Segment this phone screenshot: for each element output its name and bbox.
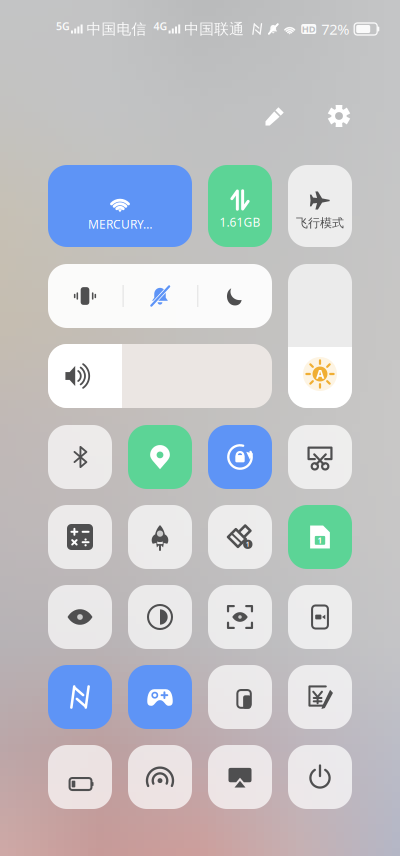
staticText: 中国联通 bbox=[184, 20, 244, 38]
staticText: 1 bbox=[317, 535, 322, 546]
button[interactable]: Power saving bbox=[48, 745, 112, 809]
button[interactable]: 飞行模式 bbox=[288, 165, 352, 247]
button[interactable]: Screen cast bbox=[208, 745, 272, 809]
button[interactable]: SIM card bbox=[288, 505, 352, 569]
button[interactable]: Screenshot bbox=[288, 425, 352, 489]
button[interactable]: 1.61GB bbox=[208, 165, 272, 247]
button[interactable]: Contrast bbox=[128, 585, 192, 649]
button[interactable]: Edit bbox=[258, 99, 292, 133]
button[interactable]: Cleaner bbox=[208, 505, 272, 569]
staticText: 1.61GB bbox=[219, 214, 260, 230]
button[interactable]: Accelerate bbox=[128, 505, 192, 569]
button[interactable]: Volume bbox=[48, 344, 272, 408]
staticText: 1 bbox=[246, 540, 250, 549]
staticText: 72% bbox=[321, 19, 349, 39]
button[interactable]: MERCURY… bbox=[48, 165, 192, 247]
staticText: HD bbox=[302, 23, 316, 35]
button[interactable]: Silent bbox=[123, 264, 197, 328]
button[interactable]: Screen recorder bbox=[288, 585, 352, 649]
button[interactable]: Do not disturb bbox=[198, 264, 272, 328]
staticText: 4G bbox=[154, 19, 168, 33]
button[interactable]: Brightness bbox=[288, 264, 352, 408]
button[interactable]: Payment bbox=[288, 665, 352, 729]
button[interactable]: Settings bbox=[322, 99, 356, 133]
button[interactable]: NFC bbox=[48, 665, 112, 729]
staticText: MERCURY… bbox=[88, 216, 152, 232]
button[interactable]: Rotation lock bbox=[208, 425, 272, 489]
button[interactable]: Split screen bbox=[208, 665, 272, 729]
button[interactable]: Vibrate bbox=[48, 264, 122, 328]
button[interactable]: Eye scan bbox=[208, 585, 272, 649]
staticText: 中国电信 bbox=[87, 20, 147, 38]
button[interactable]: Power bbox=[288, 745, 352, 809]
button[interactable]: Calculator bbox=[48, 505, 112, 569]
button[interactable]: Hotspot bbox=[128, 745, 192, 809]
staticText: 飞行模式 bbox=[296, 216, 344, 230]
button[interactable]: Location bbox=[128, 425, 192, 489]
staticText: A bbox=[316, 366, 324, 382]
button[interactable]: Game mode bbox=[128, 665, 192, 729]
button[interactable]: Bluetooth bbox=[48, 425, 112, 489]
button[interactable]: Eye comfort bbox=[48, 585, 112, 649]
staticText: 5G bbox=[56, 19, 70, 33]
